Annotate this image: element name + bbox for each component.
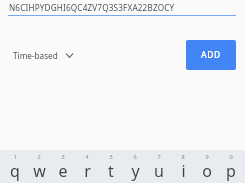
staticText: 5 [109,153,113,161]
staticText: 3 [61,153,65,161]
staticText: 4 [85,153,89,161]
staticText: 0 [229,153,233,161]
staticText: q [10,160,20,182]
staticText: 9 [205,153,209,161]
button[interactable]: 2 [27,150,51,183]
button[interactable]: 5 [99,150,123,183]
staticText: Time-based [13,50,58,61]
button[interactable]: 7 [147,150,171,183]
staticText: e [58,160,68,182]
button[interactable]: ADD [186,40,236,70]
staticText: i [181,160,186,182]
button[interactable]: Time-based [11,42,76,68]
staticText: u [154,160,164,182]
staticText: p [226,160,236,182]
staticText: y [131,160,140,182]
button[interactable]: 1 [2,150,27,183]
staticText: 7 [157,153,161,161]
staticText: 1 [13,153,17,161]
button[interactable]: 8 [171,150,195,183]
staticText: 2 [37,153,41,161]
button[interactable]: 3 [51,150,75,183]
button[interactable]: 9 [195,150,219,183]
staticText: w [33,160,46,182]
button[interactable]: 4 [75,150,99,183]
staticText: o [202,160,212,182]
staticText: N6CIHPYDGHI6QC4ZV7Q3S3FXA22BZOCY [9,2,175,13]
staticText: r [84,160,91,182]
staticText: 8 [181,153,185,161]
staticText: 6 [133,153,137,161]
staticText: ADD [201,49,221,61]
staticText: t [108,160,114,182]
button[interactable]: N6CIHPYDGHI6QC4ZV7Q3S3FXA22BZOCY [8,0,236,20]
button[interactable]: 0 [219,150,243,183]
button[interactable]: 6 [123,150,147,183]
